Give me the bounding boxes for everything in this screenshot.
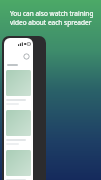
staticText: You can also watch training video about … (10, 9, 94, 27)
button[interactable] (6, 70, 31, 105)
button[interactable]: Search (23, 53, 30, 60)
button[interactable] (6, 150, 31, 180)
button[interactable] (6, 110, 31, 145)
